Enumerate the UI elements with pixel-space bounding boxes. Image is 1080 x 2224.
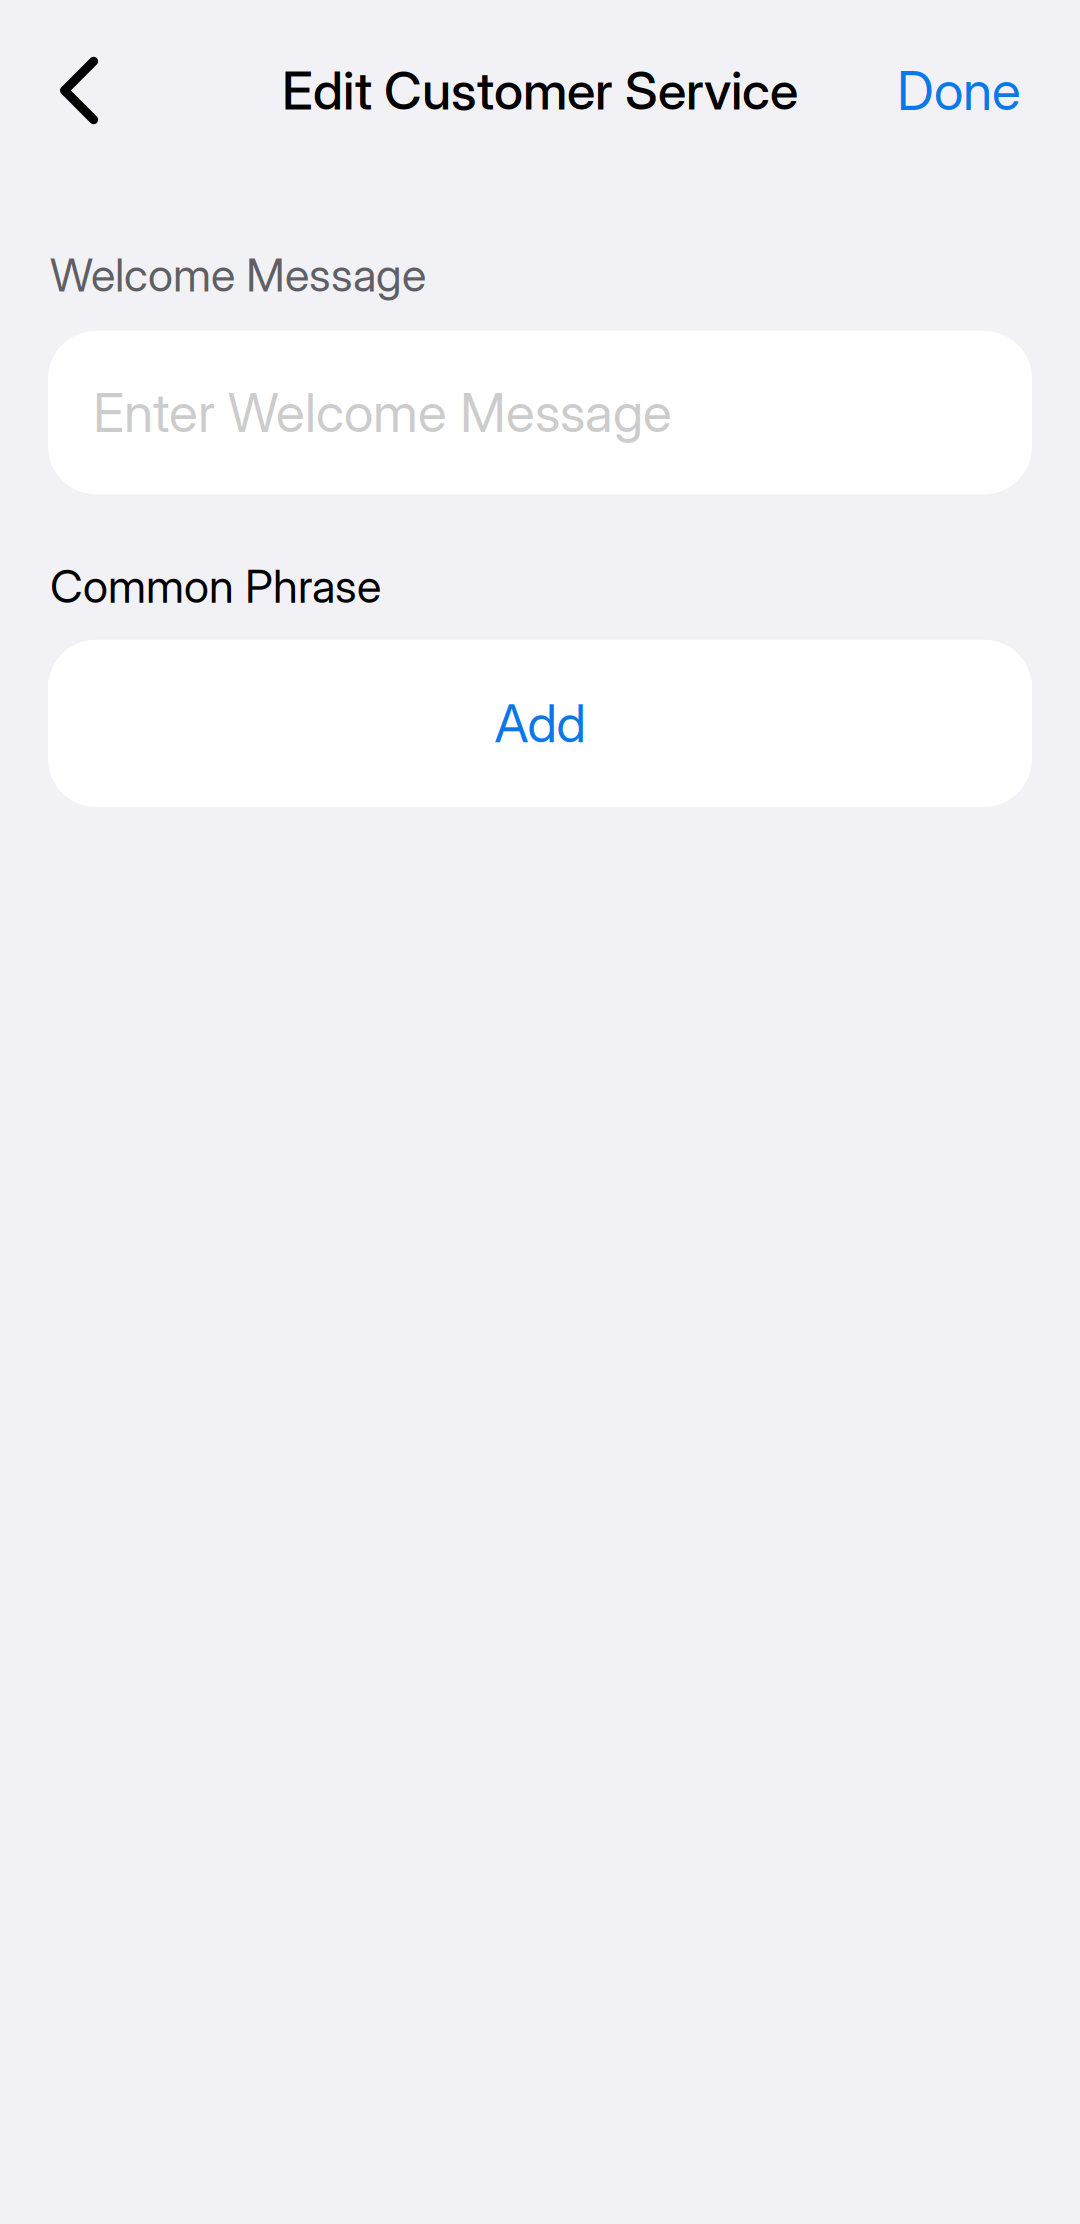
button[interactable]: Back [0,21,138,160]
staticText: Welcome Message [50,248,426,302]
staticText: Enter Welcome Message [93,380,672,445]
staticText: Common Phrase [50,559,381,614]
staticText: Edit Customer Service [282,59,798,122]
button[interactable]: Add [48,640,1032,807]
button[interactable]: Done [857,38,1080,143]
staticText: Add [494,692,585,755]
staticText: Done [897,58,1021,123]
button[interactable]: Enter Welcome Message [48,331,1032,494]
